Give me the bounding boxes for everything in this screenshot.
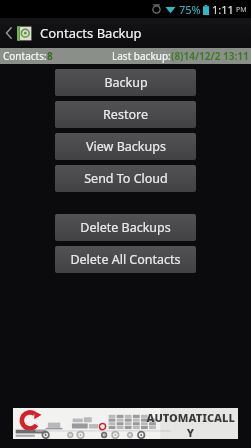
staticText: Contacts Backup [40,24,142,42]
staticText: 75% [179,2,201,17]
staticText: Restore [103,106,148,123]
staticText: 1:11 [212,2,234,17]
button[interactable]: Delete All Contacts [55,246,196,273]
staticText: Last backup: [112,49,171,63]
button[interactable]: Backup [55,69,196,96]
staticText: Backup [104,74,148,91]
button[interactable]: Send To Cloud [55,165,196,192]
staticText: View Backups [86,138,166,155]
button[interactable]: View Backups [55,133,196,160]
button[interactable]: Advertisement: OpenShift - sign up free [13,408,238,439]
button[interactable]: Restore [55,101,196,128]
staticText: Send To Cloud [84,170,168,187]
staticText: Contacts: [3,49,47,63]
button[interactable]: Contacts Backup [0,18,251,48]
staticText: AUTOMATICALLY [146,410,235,437]
staticText: (8)14/12/2 13:11 [171,49,249,63]
staticText: Delete All Contacts [70,251,181,268]
button[interactable]: Delete Backups [55,214,196,241]
staticText: Delete Backups [80,219,171,236]
staticText: PM [236,5,247,15]
staticText: 8 [47,49,53,63]
